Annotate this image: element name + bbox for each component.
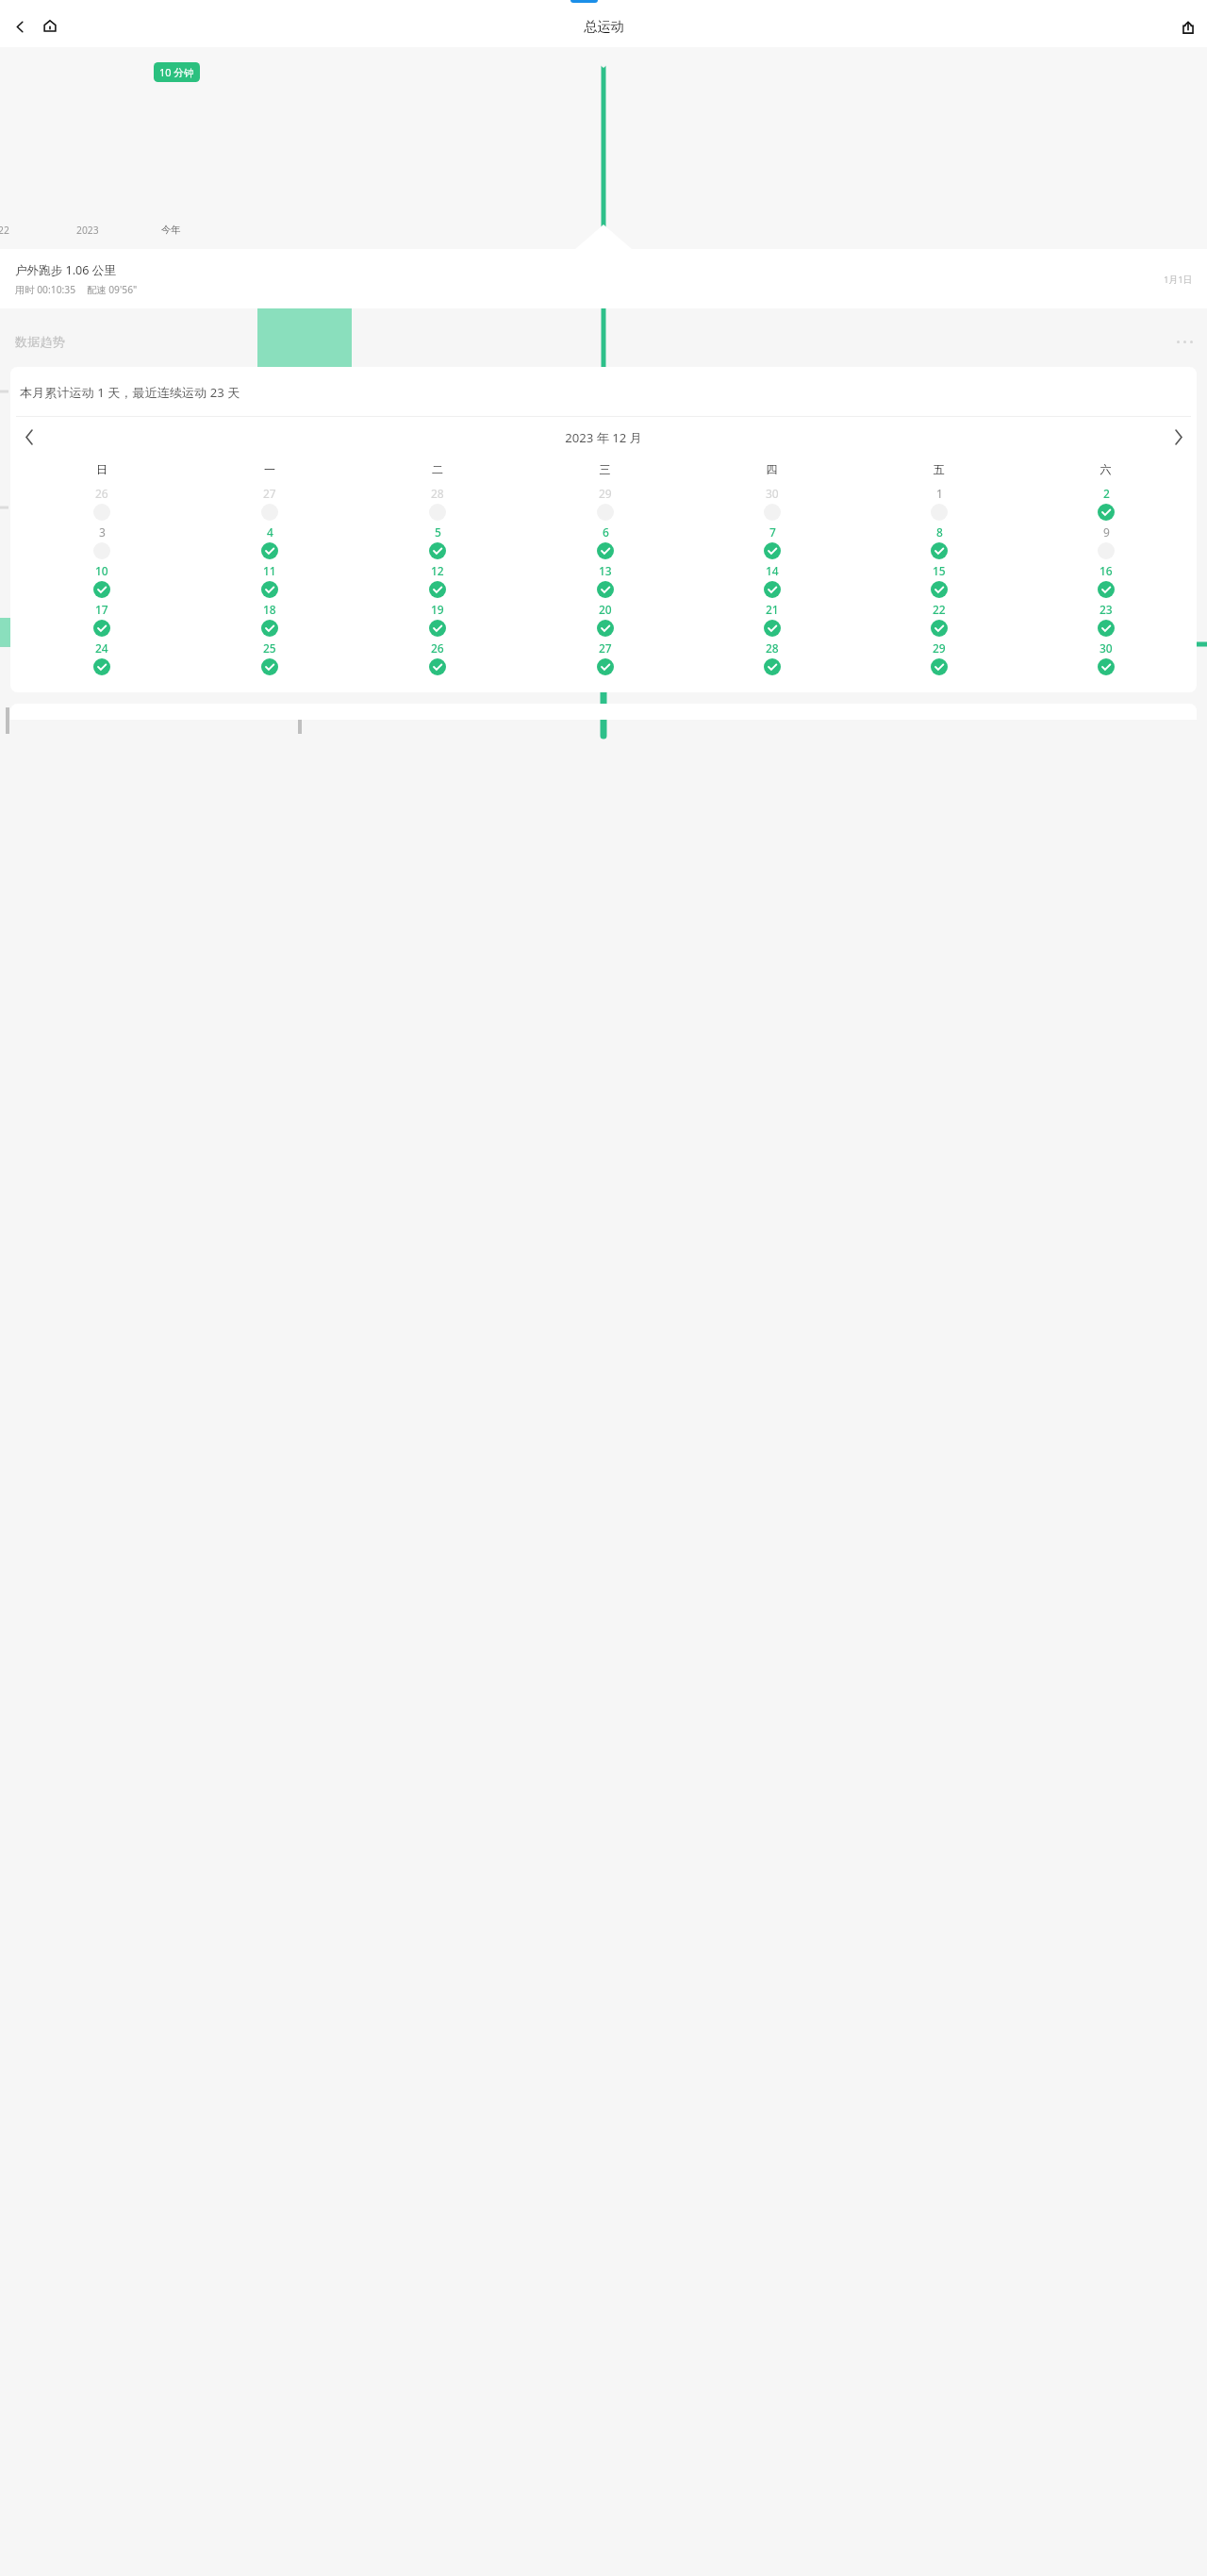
button[interactable]: 6 bbox=[521, 524, 688, 563]
staticText: 26 bbox=[431, 640, 444, 656]
button[interactable]: 22 bbox=[855, 602, 1022, 640]
staticText: 今年 bbox=[161, 224, 181, 236]
button[interactable]: Previous month bbox=[16, 424, 41, 450]
staticText: 30 bbox=[1100, 640, 1113, 656]
staticText: 18 bbox=[263, 602, 276, 617]
staticText: 14 bbox=[766, 563, 779, 578]
staticText: 1月1日 bbox=[1164, 274, 1193, 286]
button[interactable]: 1 bbox=[855, 486, 1022, 524]
staticText: 用时 00:10:35 bbox=[15, 283, 76, 296]
button[interactable]: 14 bbox=[688, 563, 855, 602]
staticText: 2023 bbox=[76, 224, 99, 237]
button[interactable]: 16 bbox=[1022, 563, 1189, 602]
button[interactable]: Back bbox=[9, 16, 30, 37]
button[interactable]: 4 bbox=[186, 524, 354, 563]
staticText: 2023 年 12 月 bbox=[41, 429, 1166, 446]
staticText: 26 bbox=[95, 486, 108, 501]
button[interactable]: 29 bbox=[855, 640, 1022, 679]
staticText: 10 bbox=[95, 563, 108, 578]
button[interactable]: 21 bbox=[688, 602, 855, 640]
button[interactable]: 3 bbox=[18, 524, 186, 563]
button[interactable]: 30 bbox=[1022, 640, 1189, 679]
staticText: 27 bbox=[263, 486, 276, 501]
staticText: 配速 09'56" bbox=[87, 283, 138, 296]
staticText: 9 bbox=[1103, 524, 1110, 540]
button[interactable]: 7 bbox=[688, 524, 855, 563]
staticText: 22 bbox=[933, 602, 946, 617]
button[interactable]: 28 bbox=[354, 486, 521, 524]
staticText: 19 bbox=[431, 602, 444, 617]
button[interactable]: 17 bbox=[18, 602, 186, 640]
button[interactable]: 8 bbox=[855, 524, 1022, 563]
staticText: 六 bbox=[1022, 462, 1189, 476]
button[interactable]: 26 bbox=[354, 640, 521, 679]
button[interactable]: 9 bbox=[1022, 524, 1189, 563]
staticText: 15 bbox=[933, 563, 946, 578]
button[interactable]: 12 bbox=[354, 563, 521, 602]
staticText: 21 bbox=[766, 602, 779, 617]
staticText: 户外跑步 1.06 公里 bbox=[15, 262, 116, 278]
staticText: 17 bbox=[95, 602, 108, 617]
staticText: 总运动 bbox=[584, 18, 624, 35]
button[interactable]: 27 bbox=[521, 640, 688, 679]
button[interactable]: Home bbox=[40, 16, 60, 37]
staticText: 6 bbox=[603, 524, 609, 540]
button[interactable]: 15 bbox=[855, 563, 1022, 602]
button[interactable]: 27 bbox=[186, 486, 354, 524]
staticText: 23 bbox=[1100, 602, 1113, 617]
staticText: 日 bbox=[18, 462, 186, 476]
staticText: 29 bbox=[599, 486, 612, 501]
staticText: 25 bbox=[263, 640, 276, 656]
staticText: 7 bbox=[769, 524, 776, 540]
staticText: 8 bbox=[936, 524, 943, 540]
staticText: 数据趋势 bbox=[15, 334, 65, 350]
staticText: 本月累计运动 1 天，最近连续运动 23 天 bbox=[20, 384, 240, 401]
staticText: 12 bbox=[431, 563, 444, 578]
button[interactable]: 25 bbox=[186, 640, 354, 679]
button[interactable]: 30 bbox=[688, 486, 855, 524]
staticText: 1 bbox=[936, 486, 943, 501]
staticText: 五 bbox=[855, 462, 1022, 476]
button[interactable]: 13 bbox=[521, 563, 688, 602]
staticText: 一 bbox=[186, 462, 354, 476]
staticText: 4 bbox=[267, 524, 273, 540]
staticText: 30 bbox=[766, 486, 779, 501]
button[interactable]: 23 bbox=[1022, 602, 1189, 640]
button[interactable]: 11 bbox=[186, 563, 354, 602]
button[interactable]: 户外跑步 1.06 公里 bbox=[0, 249, 1207, 308]
staticText: 28 bbox=[766, 640, 779, 656]
staticText: 四 bbox=[688, 462, 855, 476]
staticText: 三 bbox=[521, 462, 688, 476]
staticText: 24 bbox=[95, 640, 108, 656]
staticText: 5 bbox=[435, 524, 441, 540]
button[interactable]: Next month bbox=[1166, 424, 1191, 450]
staticText: 29 bbox=[933, 640, 946, 656]
button[interactable]: 26 bbox=[18, 486, 186, 524]
button[interactable]: 24 bbox=[18, 640, 186, 679]
button[interactable]: 5 bbox=[354, 524, 521, 563]
button[interactable]: 28 bbox=[688, 640, 855, 679]
button[interactable]: Share bbox=[1177, 16, 1199, 38]
button[interactable]: 20 bbox=[521, 602, 688, 640]
staticText: 二 bbox=[354, 462, 521, 476]
staticText: 20 bbox=[599, 602, 612, 617]
staticText: 11 bbox=[263, 563, 276, 578]
button[interactable]: 19 bbox=[354, 602, 521, 640]
staticText: 27 bbox=[599, 640, 612, 656]
button[interactable]: 2 bbox=[1022, 486, 1189, 524]
staticText: 22 bbox=[0, 224, 9, 237]
staticText: 16 bbox=[1100, 563, 1113, 578]
button[interactable]: 18 bbox=[186, 602, 354, 640]
button[interactable]: 10 bbox=[18, 563, 186, 602]
button[interactable]: 29 bbox=[521, 486, 688, 524]
staticText: 13 bbox=[599, 563, 612, 578]
staticText: 3 bbox=[99, 524, 106, 540]
staticText: 10 分钟 bbox=[159, 65, 194, 79]
staticText: 2 bbox=[1103, 486, 1110, 501]
button[interactable]: More options bbox=[1172, 329, 1197, 354]
staticText: 28 bbox=[431, 486, 444, 501]
